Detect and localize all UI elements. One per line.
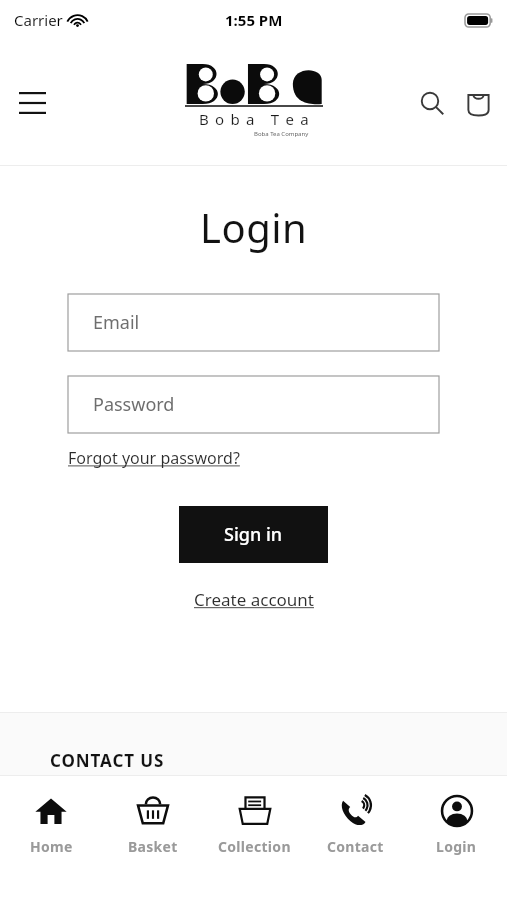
staticText: Basket (128, 837, 178, 856)
staticText: Sign in (224, 522, 283, 547)
button[interactable]: Cart (455, 80, 501, 126)
staticText: Create account (194, 588, 314, 611)
staticText: CONTACT US (50, 749, 165, 772)
staticText: Contact (327, 837, 384, 856)
button[interactable]: Sign in (179, 506, 328, 563)
staticText: Password (93, 392, 175, 417)
staticText: Forgot your password? (68, 447, 240, 469)
button[interactable]: Home (0, 776, 102, 900)
button[interactable]: Contact (305, 776, 406, 900)
button[interactable]: Basket (102, 776, 204, 900)
button[interactable]: Search (409, 80, 455, 126)
button[interactable]: Menu (8, 79, 56, 127)
staticText: Login (200, 200, 308, 254)
button[interactable]: Boba Tea home (185, 64, 323, 138)
staticText: Boba Tea Company (254, 130, 309, 138)
button[interactable]: Collection (204, 776, 305, 900)
button[interactable]: Email (68, 294, 439, 351)
staticText: Login (436, 837, 477, 856)
button[interactable]: Create account (194, 588, 314, 611)
button[interactable]: Login (406, 776, 507, 900)
staticText: Home (30, 837, 73, 856)
staticText: Collection (218, 837, 291, 856)
staticText: 1:55 PM (225, 10, 283, 30)
button[interactable]: Forgot your password? (68, 447, 240, 469)
staticText: Email (93, 310, 140, 335)
staticText: B o b a T e a (199, 109, 310, 129)
button[interactable]: Password (68, 376, 439, 433)
staticText: Carrier (14, 10, 63, 30)
